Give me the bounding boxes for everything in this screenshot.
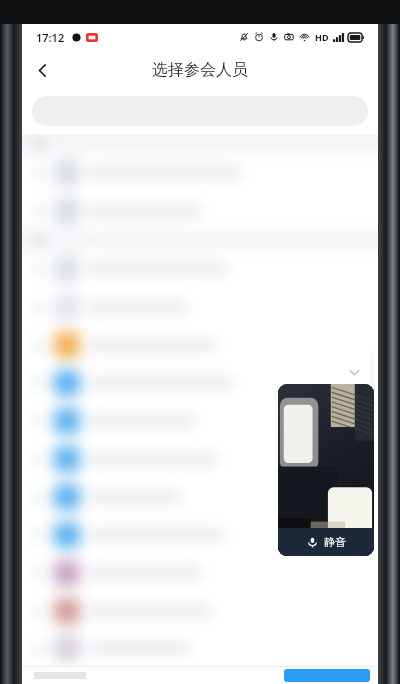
button[interactable]: [22, 630, 378, 666]
button[interactable]: [22, 326, 378, 364]
button[interactable]: [22, 478, 378, 516]
button[interactable]: Video preview: [278, 384, 374, 556]
button[interactable]: 静音: [278, 528, 374, 556]
button[interactable]: [22, 250, 378, 288]
staticText: 17:12: [36, 30, 65, 45]
staticText: HD: [315, 31, 329, 43]
button[interactable]: [22, 554, 378, 592]
button[interactable]: 确定: [284, 669, 370, 682]
button[interactable]: Back: [22, 50, 62, 90]
button[interactable]: Collapse video: [344, 362, 364, 382]
button[interactable]: [22, 440, 378, 478]
button[interactable]: [22, 402, 378, 440]
button[interactable]: [22, 516, 378, 554]
staticText: 选择参会人员: [152, 60, 248, 80]
button[interactable]: [22, 592, 378, 630]
button[interactable]: [22, 154, 378, 192]
button[interactable]: [22, 364, 378, 402]
button[interactable]: [22, 288, 378, 326]
staticText: 静音: [324, 535, 346, 549]
button[interactable]: [22, 192, 378, 230]
